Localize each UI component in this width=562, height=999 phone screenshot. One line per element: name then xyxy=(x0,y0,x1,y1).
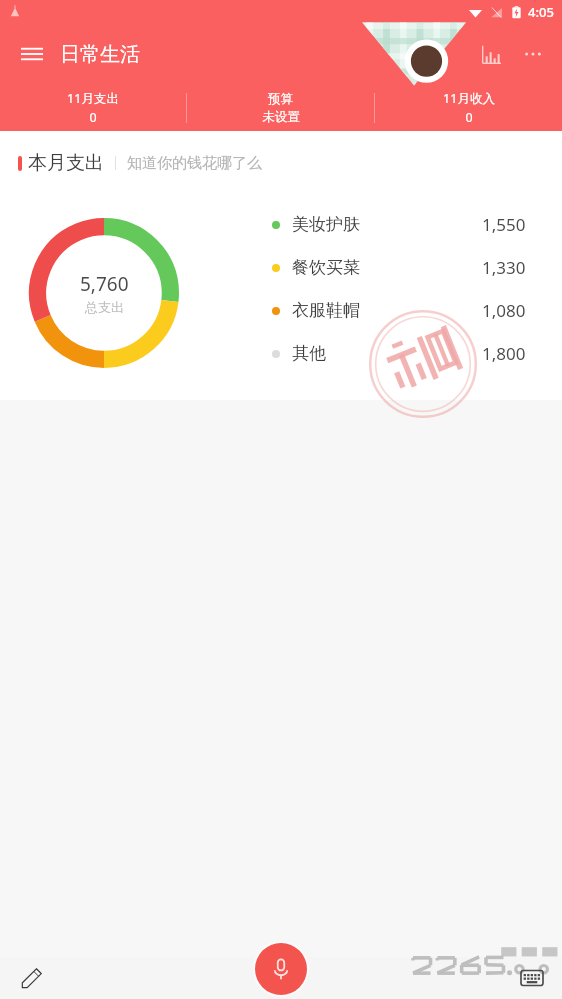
staticText: 4:05 xyxy=(528,3,554,21)
button[interactable]: 11月支出 xyxy=(0,84,186,131)
staticText: 总支出 xyxy=(85,299,124,315)
staticText: 5,760 xyxy=(80,271,129,297)
button[interactable]: More options xyxy=(512,33,554,75)
staticText: 餐饮买菜 xyxy=(292,257,360,278)
staticText: 0 xyxy=(89,109,97,126)
staticText: 1,080 xyxy=(482,299,526,322)
staticText: 知道你的钱花哪了么 xyxy=(127,154,262,173)
staticText: 日常生活 xyxy=(60,42,140,67)
staticText: 未设置 xyxy=(262,109,300,125)
button[interactable]: Voice input xyxy=(255,943,307,995)
button[interactable]: 美妆护肤 xyxy=(272,203,544,246)
staticText: 本月支出 xyxy=(28,151,104,175)
button[interactable]: Menu xyxy=(10,32,54,76)
button[interactable]: 其他 xyxy=(272,332,544,375)
button[interactable]: Keyboard xyxy=(512,958,552,998)
staticText: 1,550 xyxy=(482,213,526,236)
staticText: 衣服鞋帽 xyxy=(292,300,360,321)
button[interactable]: 衣服鞋帽 xyxy=(272,289,544,332)
staticText: 其他 xyxy=(292,343,326,364)
button[interactable]: 日常生活 xyxy=(60,42,140,67)
staticText: 0 xyxy=(465,109,473,126)
staticText: 美妆护肤 xyxy=(292,214,360,235)
staticText: 11月收入 xyxy=(443,90,495,107)
button[interactable]: Edit xyxy=(8,957,56,999)
button[interactable]: 11月收入 xyxy=(375,84,562,131)
button[interactable] xyxy=(29,218,179,368)
button[interactable]: 餐饮买菜 xyxy=(272,246,544,289)
button[interactable]: 本月支出 xyxy=(18,151,262,175)
staticText: 1,800 xyxy=(482,342,526,365)
staticText: 1,330 xyxy=(482,256,526,279)
staticText: 预算 xyxy=(268,91,293,107)
button[interactable]: Statistics xyxy=(470,33,512,75)
button[interactable]: 预算 xyxy=(187,84,374,131)
staticText: 11月支出 xyxy=(67,90,119,107)
